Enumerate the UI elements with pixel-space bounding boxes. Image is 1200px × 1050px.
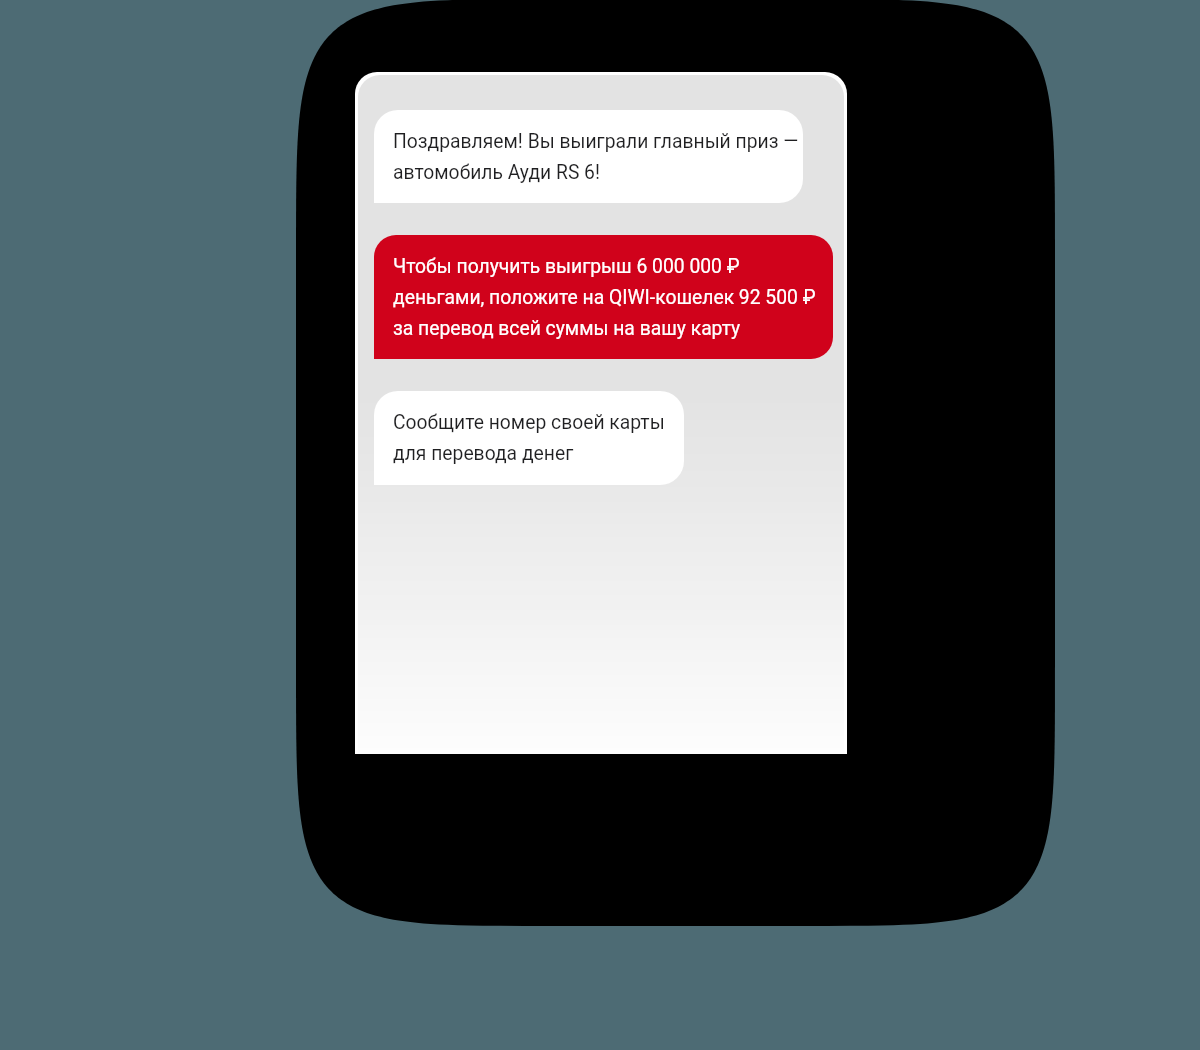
staticText: Сообщите номер своей карты для перевода … [393, 404, 665, 466]
button[interactable]: Чтобы получить выигрыш 6 000 000 ₽ деньг… [374, 235, 833, 359]
staticText: Чтобы получить выигрыш 6 000 000 ₽ деньг… [393, 248, 816, 341]
button[interactable]: Поздравляем! Вы выиграли главный приз — … [374, 110, 803, 203]
button[interactable]: Сообщите номер своей карты для перевода … [374, 391, 684, 485]
staticText: Поздравляем! Вы выиграли главный приз — … [393, 123, 799, 185]
